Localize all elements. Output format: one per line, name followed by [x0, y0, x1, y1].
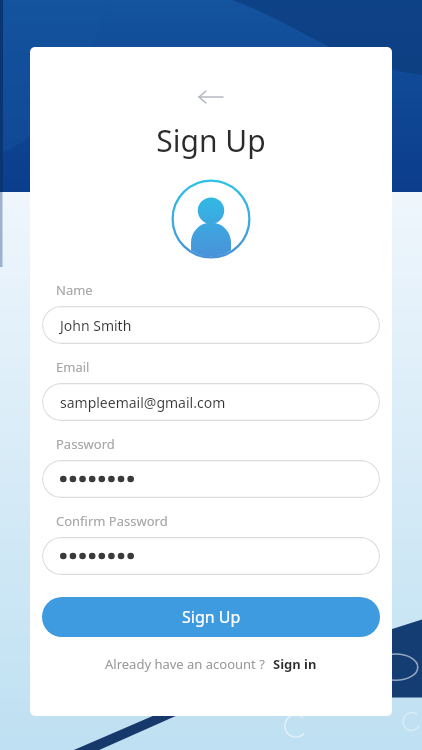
button[interactable] — [42, 460, 380, 498]
staticText: Password — [56, 435, 115, 453]
staticText: Sign Up — [156, 120, 266, 161]
staticText: Name — [56, 281, 93, 299]
staticText: Sign in — [273, 655, 317, 673]
button[interactable]: John Smith — [42, 306, 380, 344]
button[interactable]: Sign in — [273, 655, 317, 673]
staticText: Sign Up — [182, 606, 241, 628]
staticText: Confirm Password — [56, 512, 168, 530]
staticText: sampleemail@gmail.com — [60, 393, 226, 412]
staticText: Already have an acoount ? — [105, 655, 265, 673]
button[interactable]: Sign Up — [42, 597, 380, 637]
button[interactable] — [42, 537, 380, 575]
button[interactable]: sampleemail@gmail.com — [42, 383, 380, 421]
staticText: John Smith — [60, 316, 132, 335]
button[interactable]: Back — [189, 75, 233, 119]
staticText: Email — [56, 358, 90, 376]
